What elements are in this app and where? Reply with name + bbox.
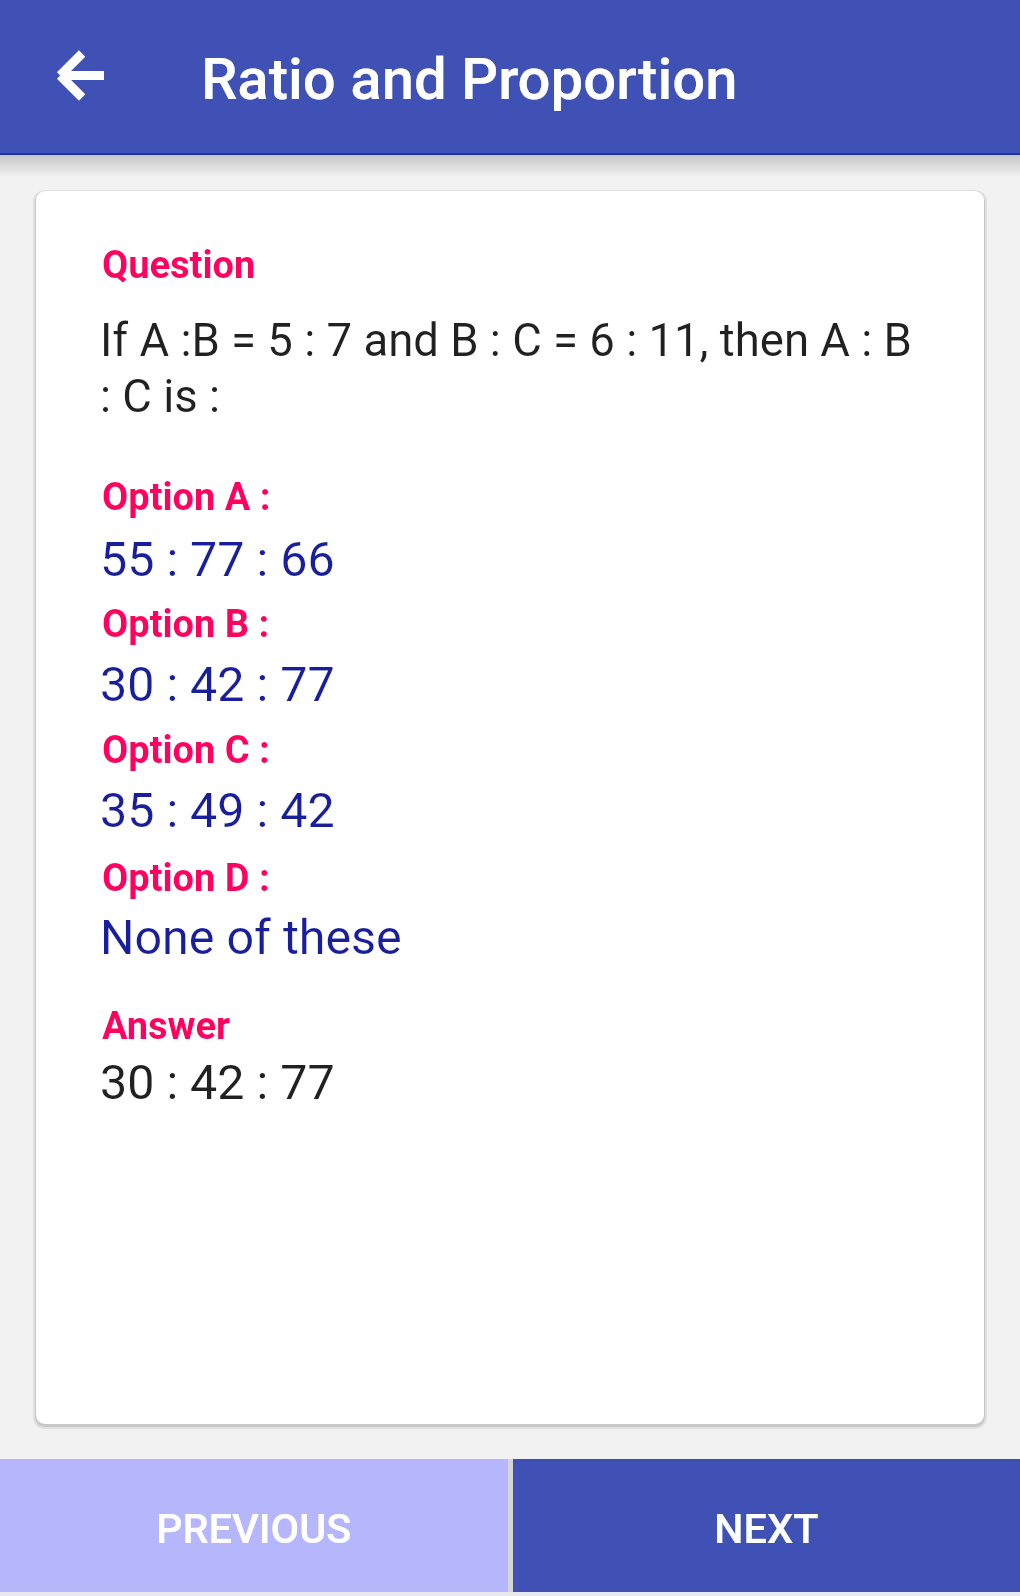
staticText: Option C : [102, 728, 270, 773]
staticText: Ratio and Proportion [201, 45, 738, 113]
button[interactable]: NEXT [513, 1459, 1020, 1592]
staticText: PREVIOUS [156, 1504, 352, 1553]
staticText: If A :B = 5 : 7 and B : C = 6 : 11, then… [100, 314, 980, 423]
staticText: Option D : [102, 856, 270, 901]
staticText: Option A : [102, 475, 271, 520]
staticText: 55 : 77 : 66 [100, 531, 335, 588]
button[interactable]: Back [32, 28, 128, 124]
staticText: NEXT [714, 1504, 819, 1553]
staticText: 35 : 49 : 42 [100, 782, 335, 839]
staticText: Answer [102, 1004, 230, 1049]
staticText: Question [102, 243, 256, 288]
staticText: Option B : [102, 602, 270, 647]
staticText: None of these [100, 909, 402, 966]
button[interactable]: PREVIOUS [0, 1459, 508, 1592]
staticText: 30 : 42 : 77 [100, 1054, 335, 1111]
staticText: 30 : 42 : 77 [100, 656, 335, 713]
